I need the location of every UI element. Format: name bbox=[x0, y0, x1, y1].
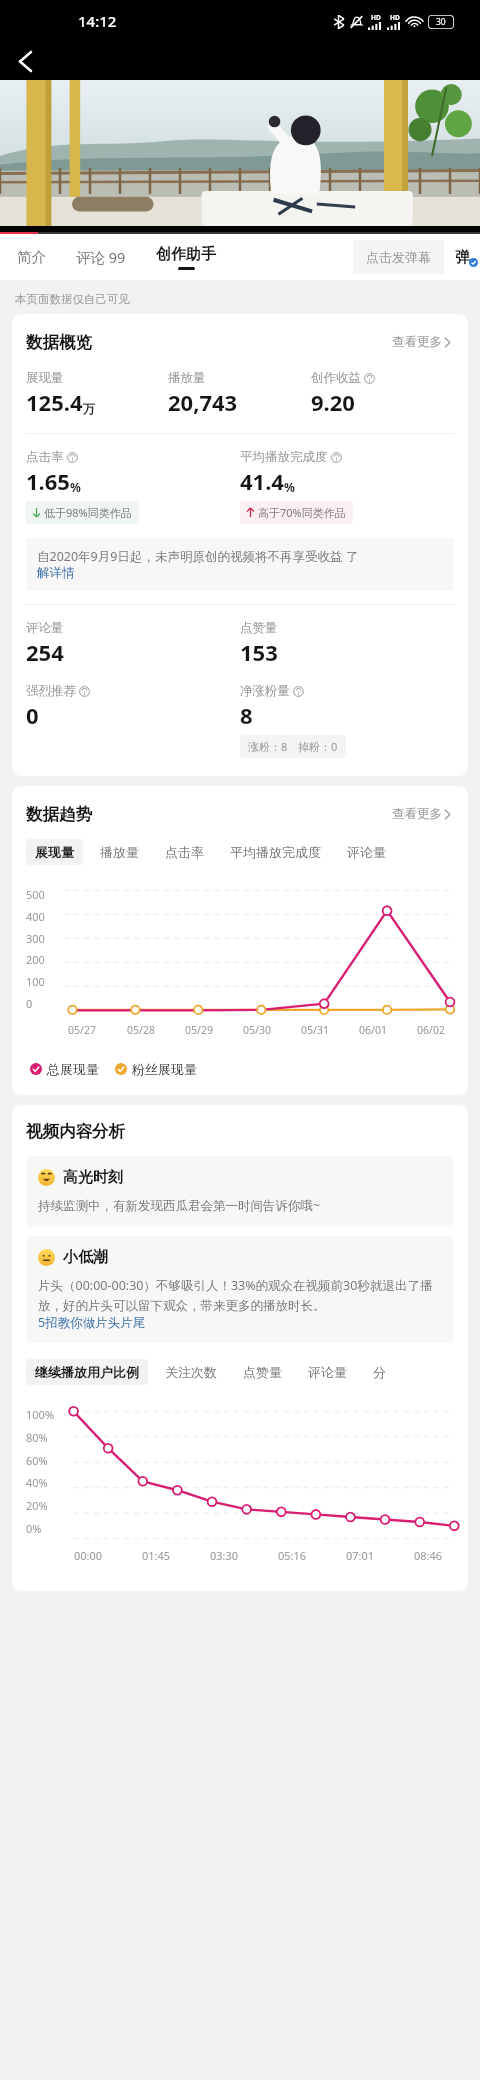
button[interactable]: 关注次数 bbox=[156, 1359, 226, 1385]
staticText: 40% bbox=[26, 1475, 48, 1490]
button[interactable]: 点赞量 bbox=[234, 1359, 291, 1385]
staticText: 分 bbox=[373, 1364, 386, 1380]
staticText: 解详情 bbox=[37, 565, 75, 581]
staticText: 强烈推荐 bbox=[26, 683, 76, 699]
staticText: 万 bbox=[83, 401, 95, 416]
button[interactable]: 点击发弹幕 bbox=[353, 240, 480, 274]
button[interactable]: 平均播放完成度 bbox=[221, 839, 330, 865]
staticText: 点赞量 bbox=[240, 620, 278, 636]
staticText: 254 bbox=[26, 637, 64, 667]
staticText: 100 bbox=[26, 974, 45, 989]
staticText: 100% bbox=[26, 1407, 55, 1422]
staticText: 300 bbox=[26, 931, 45, 946]
staticText: 查看更多 bbox=[392, 806, 442, 822]
button[interactable]: 点击率 bbox=[156, 839, 213, 865]
staticText: 点击率 bbox=[165, 844, 204, 860]
button[interactable]: Back bbox=[8, 44, 42, 78]
staticText: 0 bbox=[26, 700, 39, 730]
button[interactable]: 创作助手 bbox=[154, 245, 218, 270]
staticText: 涨粉：8 bbox=[248, 739, 288, 754]
button[interactable]: 评论 99 bbox=[74, 241, 128, 273]
staticText: 05/31 bbox=[301, 1023, 329, 1037]
staticText: 500 bbox=[26, 887, 45, 902]
staticText: 持续监测中，有新发现西瓜君会第一时间告诉你哦~ bbox=[38, 1197, 321, 1214]
button[interactable]: 分 bbox=[364, 1359, 395, 1385]
staticText: 点击发弹幕 bbox=[366, 249, 431, 265]
staticText: 41.4 bbox=[240, 466, 284, 496]
staticText: 评论量 bbox=[26, 620, 64, 636]
staticText: 弹 bbox=[455, 248, 470, 267]
button[interactable]: 查看更多 bbox=[388, 802, 454, 826]
button[interactable]: 查看更多 bbox=[388, 330, 454, 354]
staticText: 平均播放完成度 bbox=[230, 844, 321, 860]
staticText: 点赞量 bbox=[243, 1364, 282, 1380]
staticText: 1.65 bbox=[26, 466, 70, 496]
staticText: 简介 bbox=[17, 248, 46, 266]
button[interactable]: 展现量 bbox=[26, 839, 83, 865]
staticText: 80% bbox=[26, 1430, 48, 1445]
staticText: 评论量 bbox=[347, 844, 386, 860]
staticText: % bbox=[70, 479, 81, 495]
staticText: 小低潮 bbox=[63, 1248, 108, 1267]
staticText: 平均播放完成度 bbox=[240, 449, 328, 465]
staticText: 高光时刻 bbox=[63, 1168, 123, 1187]
staticText: 净涨粉量 bbox=[240, 683, 290, 699]
staticText: 创作收益 bbox=[311, 370, 361, 386]
staticText: 05:16 bbox=[278, 1548, 307, 1563]
button[interactable]: 5招教你做片头片尾 bbox=[38, 1314, 146, 1331]
staticText: 评论量 bbox=[308, 1364, 347, 1380]
staticText: 08:46 bbox=[414, 1548, 443, 1563]
staticText: 高于70%同类作品 bbox=[258, 505, 346, 520]
staticText: 播放量 bbox=[100, 844, 139, 860]
button[interactable]: 简介 bbox=[15, 242, 48, 272]
staticText: 06/02 bbox=[417, 1023, 445, 1037]
staticText: 05/29 bbox=[185, 1023, 213, 1037]
button[interactable]: 自2020年9月9日起，未声明原创的视频将不再享受收益 了 bbox=[26, 538, 454, 591]
staticText: 本页面数据仅自己可见 bbox=[15, 292, 130, 306]
staticText: 数据概览 bbox=[26, 332, 92, 353]
staticText: 20% bbox=[26, 1498, 48, 1513]
staticText: 视频内容分析 bbox=[26, 1121, 125, 1142]
staticText: 400 bbox=[26, 909, 45, 924]
staticText: 30 bbox=[436, 16, 446, 28]
staticText: HD bbox=[390, 13, 400, 22]
staticText: 05/28 bbox=[127, 1023, 155, 1037]
staticText: 总展现量 bbox=[47, 1061, 99, 1077]
staticText: 05/27 bbox=[68, 1023, 96, 1037]
staticText: 125.4 bbox=[26, 387, 83, 417]
staticText: 153 bbox=[240, 637, 278, 667]
button[interactable]: 播放量 bbox=[91, 839, 148, 865]
staticText: 60% bbox=[26, 1453, 48, 1468]
button[interactable]: 评论量 bbox=[338, 839, 395, 865]
staticText: 14:12 bbox=[78, 11, 117, 31]
staticText: % bbox=[284, 479, 295, 495]
staticText: 关注次数 bbox=[165, 1364, 217, 1380]
staticText: 0% bbox=[26, 1521, 42, 1536]
staticText: 展现量 bbox=[26, 370, 64, 386]
staticText: 01:45 bbox=[142, 1548, 171, 1563]
staticText: 8 bbox=[240, 700, 253, 730]
staticText: 展现量 bbox=[35, 844, 74, 860]
staticText: 自2020年9月9日起，未声明原创的视频将不再享受收益 了 bbox=[37, 548, 359, 565]
staticText: 掉粉：0 bbox=[298, 739, 338, 754]
staticText: 200 bbox=[26, 952, 45, 967]
staticText: 0 bbox=[26, 996, 33, 1011]
staticText: 05/30 bbox=[243, 1023, 271, 1037]
staticText: 03:30 bbox=[210, 1548, 239, 1563]
staticText: 06/01 bbox=[359, 1023, 387, 1037]
staticText: 00:00 bbox=[74, 1548, 103, 1563]
staticText: 低于98%同类作品 bbox=[44, 505, 132, 520]
staticText: 查看更多 bbox=[392, 334, 442, 350]
staticText: 创作助手 bbox=[156, 245, 216, 264]
staticText: 数据趋势 bbox=[26, 804, 92, 825]
staticText: 粉丝展现量 bbox=[132, 1061, 197, 1077]
staticText: 9.20 bbox=[311, 387, 355, 417]
button[interactable]: 评论量 bbox=[299, 1359, 356, 1385]
staticText: 播放量 bbox=[168, 370, 206, 386]
staticText: 继续播放用户比例 bbox=[35, 1364, 139, 1380]
staticText: HD bbox=[371, 13, 381, 22]
staticText: 片头（00:00-00:30）不够吸引人！33%的观众在视频前30秒就退出了播放… bbox=[38, 1277, 442, 1314]
button[interactable]: 继续播放用户比例 bbox=[26, 1359, 148, 1385]
staticText: 20,743 bbox=[168, 387, 238, 417]
staticText: 评论 99 bbox=[76, 247, 126, 267]
